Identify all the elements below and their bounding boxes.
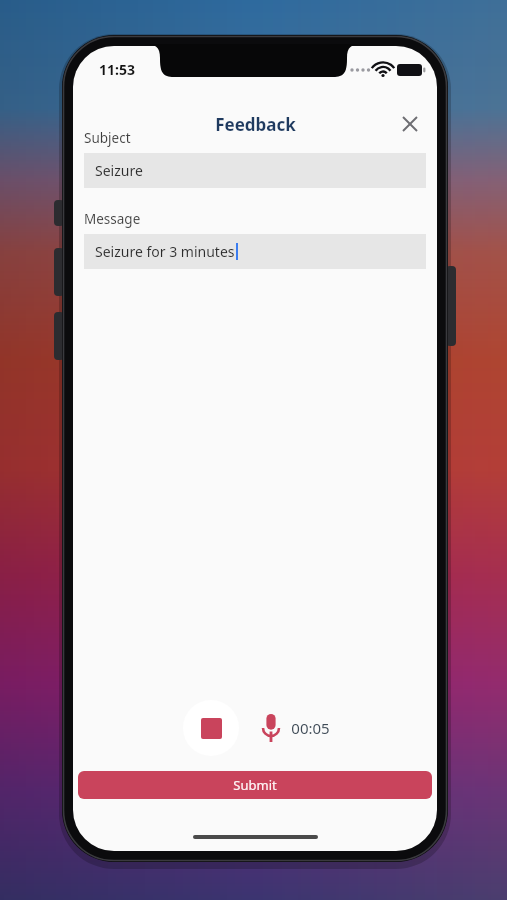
- button[interactable]: Submit: [78, 771, 432, 799]
- staticText: Seizure: [95, 161, 143, 180]
- button[interactable]: Seizure: [84, 153, 426, 188]
- staticText: Submit: [233, 776, 277, 794]
- button[interactable]: Close: [393, 107, 427, 141]
- button[interactable]: Seizure for 3 minutes: [84, 234, 426, 269]
- staticText: 11:53: [99, 60, 135, 79]
- staticText: Feedback: [215, 113, 296, 136]
- staticText: 00:05: [291, 718, 330, 738]
- staticText: Seizure for 3 minutes: [95, 242, 235, 261]
- staticText: Subject: [84, 129, 131, 147]
- button[interactable]: Stop recording: [183, 700, 239, 756]
- staticText: Message: [84, 210, 141, 228]
